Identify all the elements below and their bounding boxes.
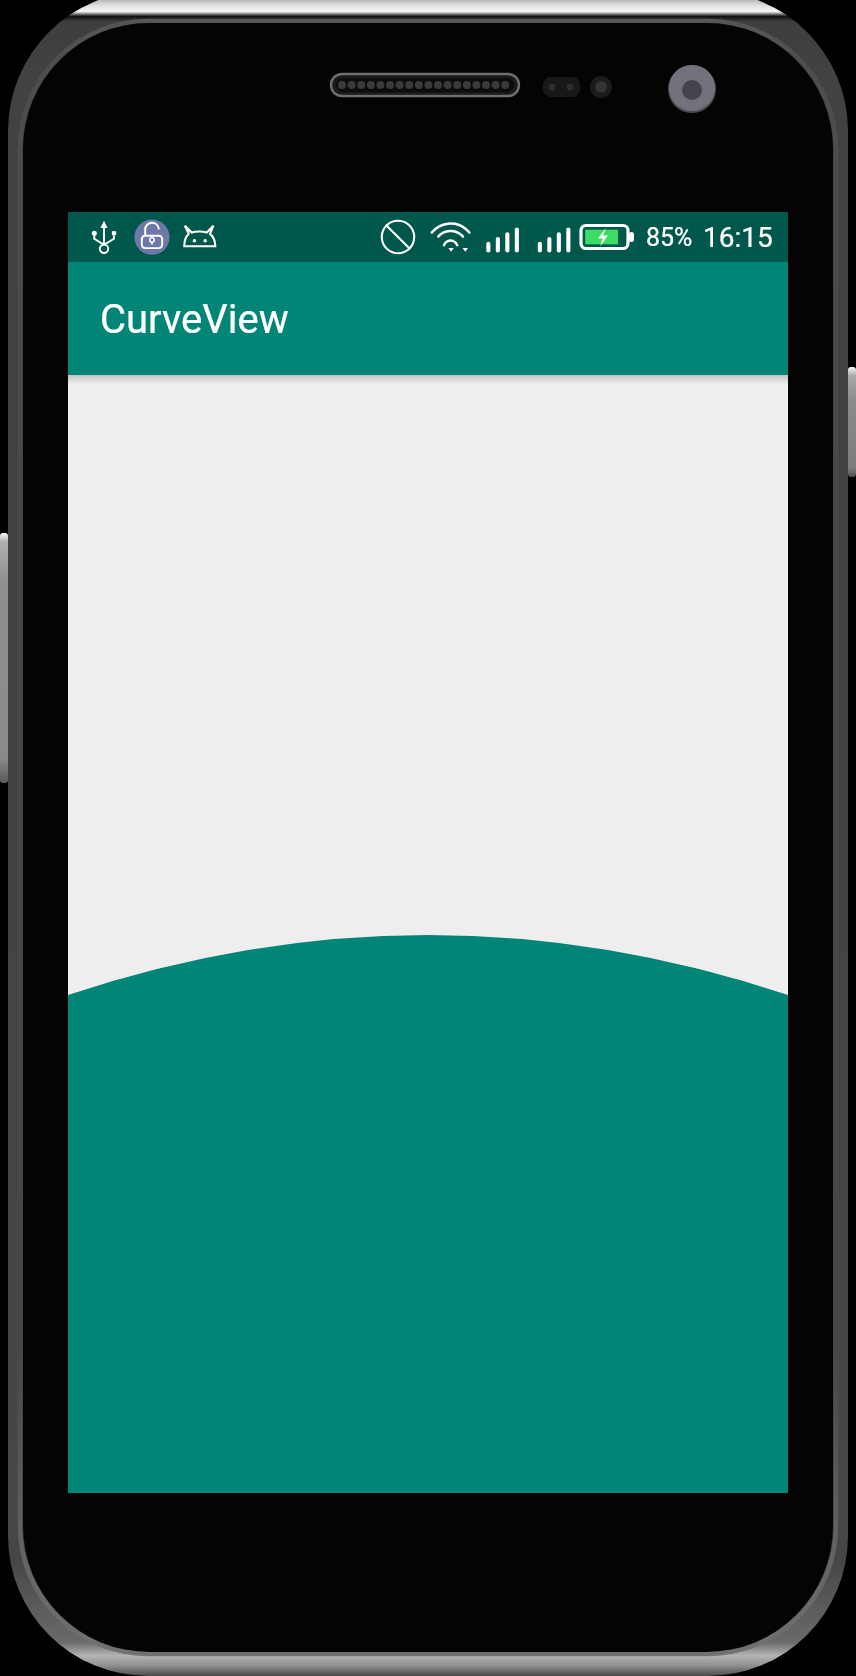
button[interactable]: CurveView — [68, 262, 788, 375]
staticText: 16:15 — [703, 221, 773, 254]
other: USB connected — [82, 212, 126, 262]
button[interactable]: Curve view — [68, 375, 788, 1493]
other: Android debug — [178, 212, 222, 262]
other: Mobile signal — [482, 212, 574, 262]
staticText: CurveView — [100, 296, 289, 343]
other: Screen lock — [130, 212, 174, 262]
other: Do not disturb — [376, 212, 420, 262]
other: Wi-Fi — [429, 212, 473, 262]
other: Battery charging — [578, 212, 636, 262]
staticText: 85% — [646, 223, 693, 252]
